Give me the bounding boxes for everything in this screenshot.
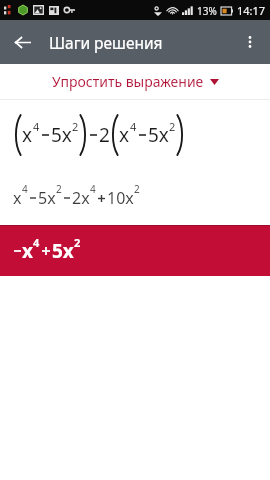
staticText: 4	[33, 235, 40, 250]
staticText: Упростить выражение	[52, 72, 204, 91]
staticText: 2	[72, 119, 79, 134]
staticText: 5x	[38, 187, 56, 209]
staticText: 2	[56, 182, 62, 196]
staticText: x	[22, 122, 33, 148]
staticText: 5x	[52, 238, 74, 264]
staticText: 13%	[197, 4, 217, 18]
staticText: 4	[22, 182, 28, 196]
staticText: 4	[33, 119, 40, 134]
staticText: 2x	[72, 187, 90, 209]
staticText: 2	[74, 235, 81, 250]
staticText: 2	[99, 122, 110, 148]
button[interactable]: x	[0, 226, 270, 276]
button[interactable]: Back	[4, 24, 40, 60]
staticText: 4	[90, 182, 96, 196]
button[interactable]: More options	[232, 24, 268, 60]
staticText: x	[119, 122, 130, 148]
staticText: 10x	[107, 187, 134, 209]
staticText: 2	[169, 119, 176, 134]
staticText: 5x	[51, 122, 72, 148]
button[interactable]: x	[0, 170, 270, 225]
button[interactable]: Упростить выражение	[46, 68, 225, 95]
staticText: 2	[134, 182, 140, 196]
staticText: 4	[130, 119, 137, 134]
button[interactable]: x	[0, 100, 270, 170]
staticText: 14:17	[237, 3, 266, 18]
staticText: 5x	[148, 122, 169, 148]
staticText: Шаги решения	[49, 32, 163, 53]
staticText: x	[13, 187, 22, 209]
staticText: x	[22, 238, 33, 264]
